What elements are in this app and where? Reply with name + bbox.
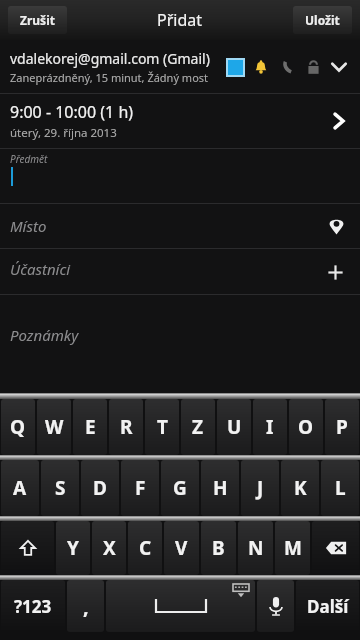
staticText: Poznámky <box>10 325 79 345</box>
staticText: I <box>266 414 274 440</box>
staticText: L <box>335 475 346 501</box>
button[interactable]: W <box>37 399 71 455</box>
staticText: Y <box>67 535 79 561</box>
staticText: Místo <box>10 216 324 236</box>
button[interactable]: Zrušit <box>8 6 67 34</box>
button[interactable]: Připomenutí <box>248 54 274 80</box>
button[interactable]: Mezerník <box>106 580 255 632</box>
button[interactable]: J <box>241 460 279 516</box>
staticText: B <box>212 535 225 561</box>
staticText: K <box>294 475 307 501</box>
staticText: T <box>157 414 168 440</box>
button[interactable]: ?123 <box>1 580 65 632</box>
staticText: V <box>175 535 188 561</box>
staticText: Uložit <box>305 12 340 28</box>
button[interactable]: 9:00 - 10:00 (1 h) <box>0 94 360 148</box>
button[interactable]: Soukromí <box>300 54 326 80</box>
staticText: Q <box>10 414 26 440</box>
staticText: Zaneprázdněný, 15 minut, Žádný most <box>10 70 209 85</box>
staticText: ?123 <box>14 595 52 618</box>
staticText: U <box>227 414 242 440</box>
button[interactable]: Q <box>1 399 35 455</box>
staticText: Z <box>192 414 204 440</box>
staticText: S <box>55 475 66 501</box>
button[interactable]: M <box>275 521 310 575</box>
staticText: J <box>257 475 264 501</box>
button[interactable]: Poznámky <box>0 295 360 393</box>
staticText: Zrušit <box>20 12 55 28</box>
button[interactable]: N <box>238 521 273 575</box>
button[interactable]: P <box>325 399 359 455</box>
staticText: Předmět <box>10 152 48 166</box>
staticText: Přidat <box>157 9 203 31</box>
button[interactable]: Konference <box>274 54 300 80</box>
staticText: H <box>213 475 228 501</box>
button[interactable]: Shift <box>1 521 54 575</box>
staticText: X <box>103 535 116 561</box>
staticText: F <box>135 475 146 501</box>
staticText: Další <box>307 595 349 618</box>
button[interactable]: Z <box>181 399 215 455</box>
button[interactable]: Účastníci <box>0 249 360 294</box>
button[interactable]: Další <box>296 580 359 632</box>
staticText: E <box>85 414 96 440</box>
staticText: O <box>298 414 314 440</box>
staticText: G <box>173 475 187 501</box>
staticText: Účastníci <box>10 259 322 279</box>
button[interactable]: Předmět <box>0 149 360 203</box>
button[interactable]: Uložit <box>293 6 352 34</box>
button[interactable]: vdalekorej@gmail.com (Gmail) <box>0 40 360 93</box>
button[interactable]: Přidat účastníka <box>322 259 348 285</box>
staticText: úterý, 29. října 2013 <box>10 125 117 141</box>
button[interactable]: L <box>321 460 359 516</box>
button[interactable]: A <box>1 460 39 516</box>
button[interactable]: O <box>289 399 323 455</box>
button[interactable]: G <box>161 460 199 516</box>
staticText: C <box>139 535 152 561</box>
staticText: , <box>83 593 89 620</box>
button[interactable]: S <box>41 460 79 516</box>
staticText: D <box>93 475 107 501</box>
staticText: A <box>13 475 27 501</box>
button[interactable]: V <box>164 521 199 575</box>
button[interactable]: E <box>73 399 107 455</box>
button[interactable]: Místo <box>0 204 360 248</box>
button[interactable]: Vybrat místo <box>324 214 348 238</box>
button[interactable]: K <box>281 460 319 516</box>
staticText: P <box>336 414 348 440</box>
button[interactable]: D <box>81 460 119 516</box>
button[interactable]: C <box>128 521 162 575</box>
button[interactable]: R <box>109 399 143 455</box>
button[interactable]: , <box>67 580 104 632</box>
button[interactable]: Smazat <box>312 521 359 575</box>
button[interactable]: T <box>145 399 179 455</box>
button[interactable]: X <box>92 521 126 575</box>
button[interactable]: I <box>253 399 287 455</box>
button[interactable]: Hlasový vstup <box>257 580 294 632</box>
staticText: M <box>284 535 302 561</box>
staticText: vdalekorej@gmail.com (Gmail) <box>10 49 210 68</box>
staticText: R <box>120 414 133 440</box>
button[interactable]: Barva <box>222 54 248 80</box>
button[interactable]: Rozbalit <box>326 54 352 80</box>
button[interactable]: B <box>201 521 236 575</box>
staticText: N <box>248 535 264 561</box>
button[interactable]: H <box>201 460 239 516</box>
staticText: 9:00 - 10:00 (1 h) <box>10 101 134 123</box>
staticText: W <box>45 414 64 440</box>
button[interactable]: Y <box>56 521 90 575</box>
button[interactable]: F <box>121 460 159 516</box>
button[interactable]: U <box>217 399 251 455</box>
